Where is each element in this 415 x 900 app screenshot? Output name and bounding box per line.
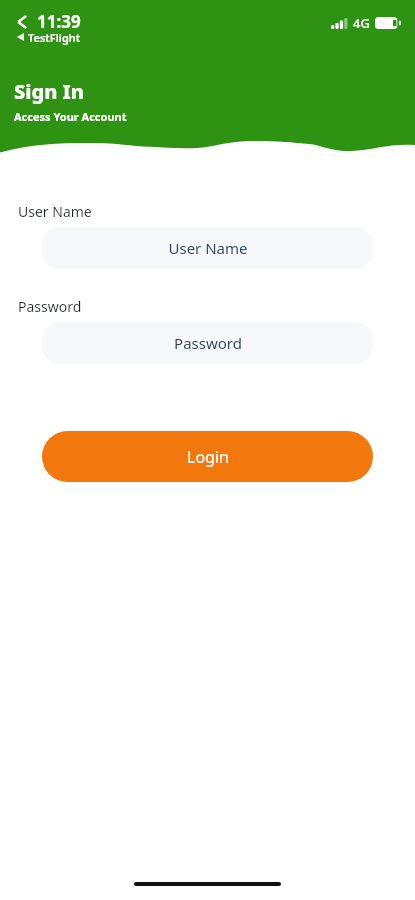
button[interactable]: Password [42, 322, 373, 364]
staticText: Access Your Account [14, 109, 127, 124]
staticText: Password [174, 333, 242, 353]
staticText: User Name [168, 238, 248, 258]
staticText: TestFlight [28, 30, 81, 45]
staticText: 11:39 [37, 10, 81, 33]
button[interactable]: User Name [42, 227, 373, 269]
staticText: Sign In [14, 78, 85, 105]
staticText: Login [187, 446, 229, 468]
staticText: Password [18, 297, 82, 316]
staticText: User Name [18, 202, 92, 221]
staticText: 4G [353, 14, 370, 32]
button[interactable]: Back [16, 14, 28, 30]
button[interactable]: Login [42, 431, 373, 482]
